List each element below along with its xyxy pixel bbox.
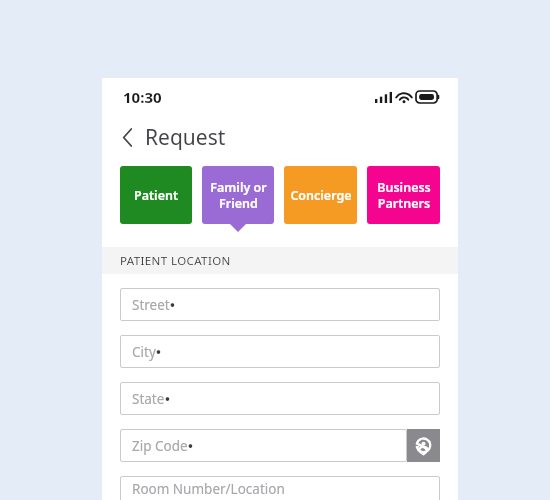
button[interactable]: State <box>120 382 440 415</box>
staticText: State <box>132 390 165 408</box>
staticText: Patient <box>134 187 178 204</box>
staticText: Request <box>145 123 226 152</box>
staticText: Room Number/Location <box>132 480 285 498</box>
button[interactable]: Find location <box>407 429 440 462</box>
button[interactable]: Family or Friend <box>202 166 274 224</box>
staticText: 10:30 <box>123 87 162 107</box>
staticText: • <box>170 296 175 314</box>
button[interactable]: Concierge <box>284 166 357 224</box>
button[interactable]: Patient <box>120 166 192 224</box>
staticText: Concierge <box>290 187 352 204</box>
staticText: Zip Code <box>132 437 188 455</box>
staticText: • <box>188 437 193 455</box>
button[interactable]: Room Number/Location <box>120 476 440 500</box>
staticText: • <box>156 343 161 361</box>
staticText: PATIENT LOCATION <box>120 253 231 269</box>
staticText: Family or Friend <box>210 179 267 211</box>
button[interactable]: Zip Code <box>120 429 407 462</box>
staticText: Business Partners <box>377 179 431 211</box>
staticText: • <box>165 390 170 408</box>
staticText: Street <box>132 296 170 314</box>
button[interactable]: Street <box>120 288 440 321</box>
button[interactable]: Business Partners <box>367 166 440 224</box>
button[interactable]: City <box>120 335 440 368</box>
button[interactable]: Back <box>114 124 140 150</box>
staticText: City <box>132 343 156 361</box>
